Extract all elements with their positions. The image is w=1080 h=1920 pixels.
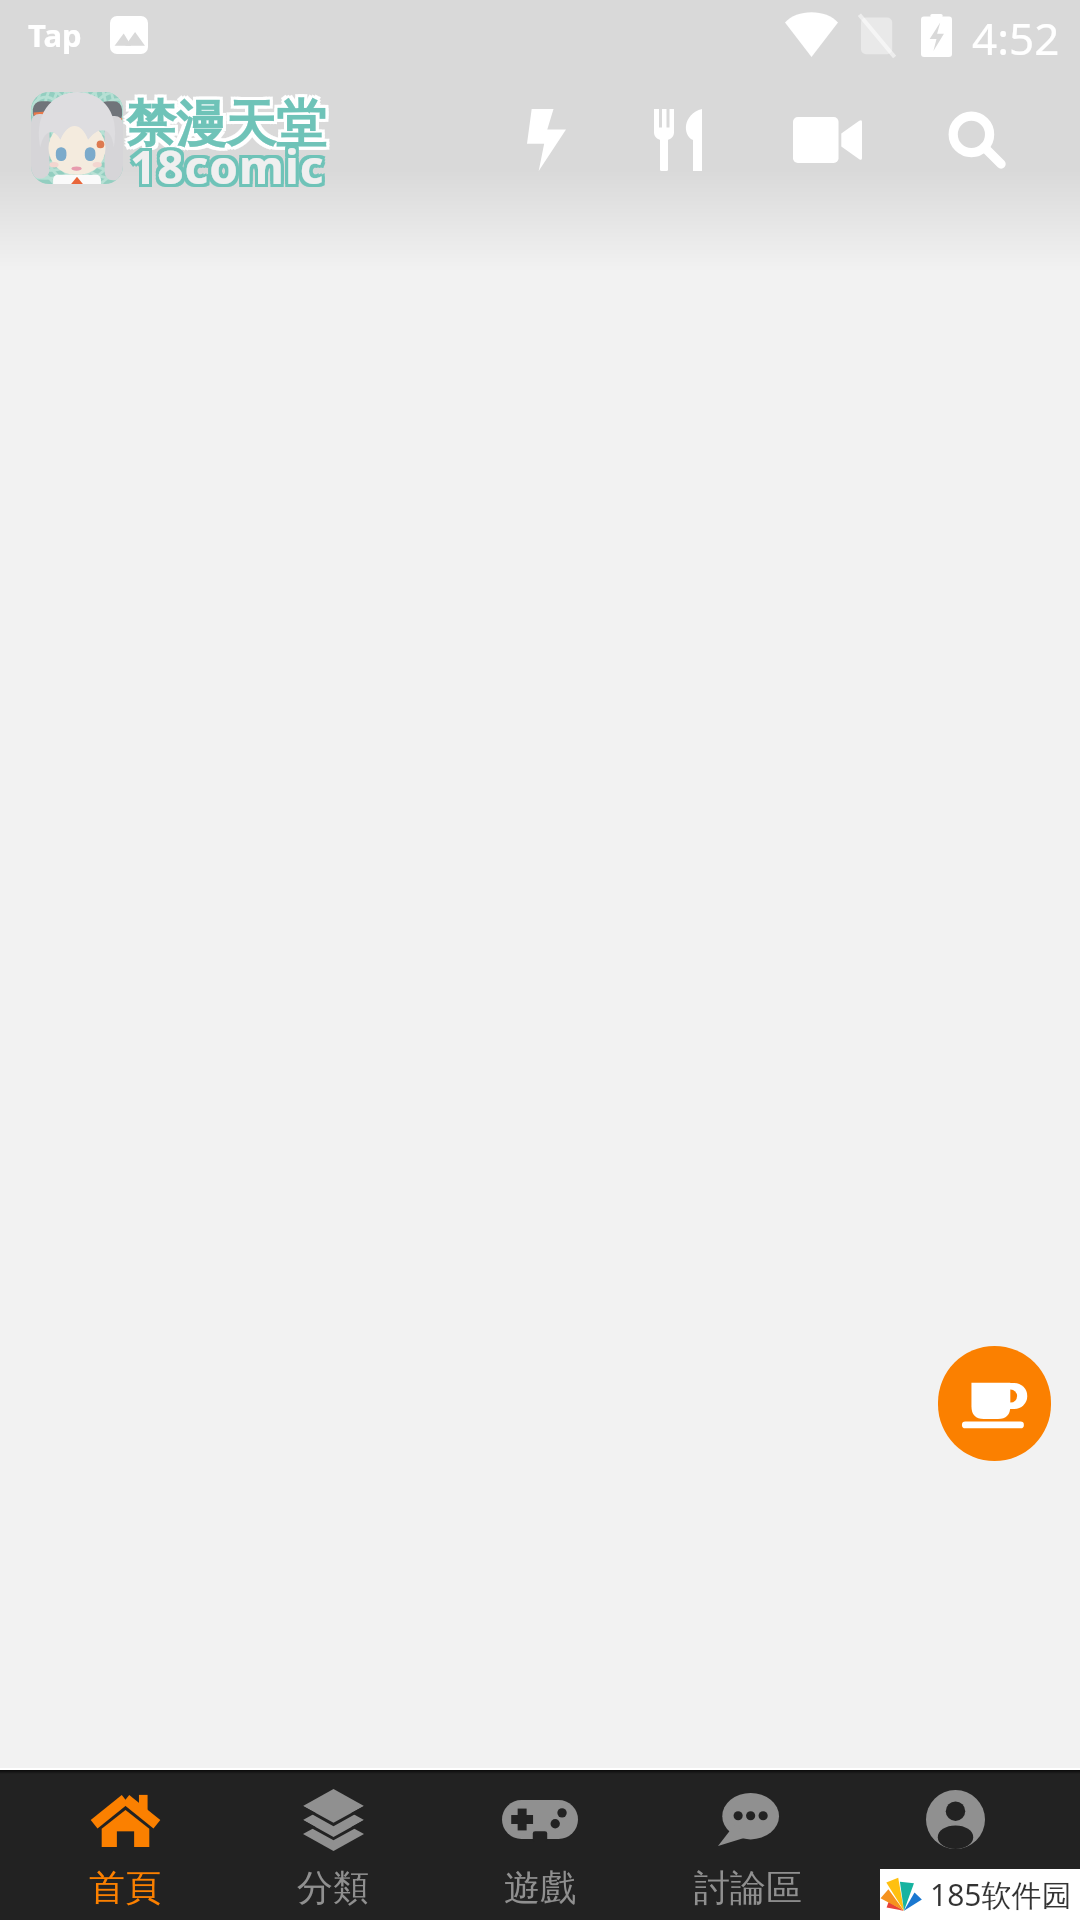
staticText: 禁漫天堂 bbox=[123, 93, 323, 156]
button[interactable]: Food bbox=[630, 92, 726, 188]
staticText: 185软件园 bbox=[930, 1874, 1072, 1915]
staticText: 首頁 bbox=[89, 1865, 161, 1910]
button[interactable]: Flash bbox=[498, 92, 594, 188]
staticText: 禁漫天堂 bbox=[129, 93, 329, 156]
staticText: 禁漫天堂 bbox=[123, 90, 323, 153]
staticText: 18comic bbox=[127, 138, 322, 201]
button[interactable]: 分類 bbox=[229, 1774, 437, 1920]
staticText: 禁漫天堂 bbox=[126, 93, 326, 156]
button[interactable]: 18comic home bbox=[26, 88, 334, 188]
button[interactable]: Coffee break bbox=[938, 1346, 1051, 1461]
staticText: 分類 bbox=[297, 1865, 369, 1910]
button[interactable]: Profile bbox=[851, 1774, 1059, 1920]
staticText: 18comic bbox=[133, 132, 328, 195]
button[interactable]: 討論區 bbox=[644, 1774, 852, 1920]
staticText: 討論區 bbox=[694, 1865, 802, 1910]
staticText: 18comic bbox=[127, 135, 322, 198]
staticText: 禁漫天堂 bbox=[129, 90, 329, 153]
staticText: 禁漫天堂 bbox=[126, 90, 326, 153]
staticText: 18comic bbox=[127, 132, 322, 195]
staticText: 禁漫天堂 bbox=[123, 96, 323, 159]
button[interactable]: Search bbox=[929, 92, 1025, 188]
staticText: 禁漫天堂 bbox=[129, 96, 329, 159]
staticText: 18comic bbox=[130, 138, 325, 201]
staticText: 18comic bbox=[133, 135, 328, 198]
staticText: 遊戲 bbox=[504, 1865, 576, 1910]
button[interactable]: 遊戲 bbox=[436, 1774, 644, 1920]
staticText: 18comic bbox=[130, 135, 325, 198]
staticText: 禁漫天堂 bbox=[126, 96, 326, 159]
staticText: Tap bbox=[28, 14, 82, 56]
button[interactable]: Video bbox=[779, 92, 875, 188]
staticText: 18comic bbox=[130, 132, 325, 195]
staticText: 18comic bbox=[133, 138, 328, 201]
button[interactable]: 首頁 bbox=[21, 1774, 229, 1920]
staticText: 4:52 bbox=[972, 8, 1060, 68]
